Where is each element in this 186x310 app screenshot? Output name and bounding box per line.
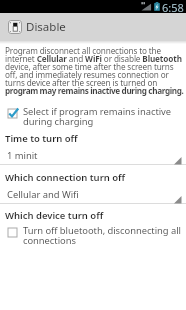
staticText: Select if program remains inactive durin… <box>23 105 183 128</box>
staticText: Time to turn off <box>5 132 78 145</box>
staticText: Disable <box>26 19 66 35</box>
other: Option disabled <box>8 228 17 237</box>
button[interactable]: Option enabled <box>0 105 186 129</box>
staticText: 6:58 <box>162 0 184 13</box>
other: Option enabled <box>8 109 17 118</box>
staticText: Program disconnect all connections to th… <box>5 45 185 97</box>
button[interactable]: Option disabled <box>0 224 186 248</box>
staticText: 1 minit <box>7 149 38 162</box>
staticText: Which device turn off <box>5 209 104 222</box>
button[interactable]: 1 minit <box>0 143 186 165</box>
staticText: Turn off bluetooth, disconnecting all co… <box>23 224 183 247</box>
staticText: Which connection turn off <box>5 171 126 184</box>
staticText: Cellular and Wifi <box>7 188 79 201</box>
button[interactable]: Cellular and Wifi <box>0 182 186 204</box>
